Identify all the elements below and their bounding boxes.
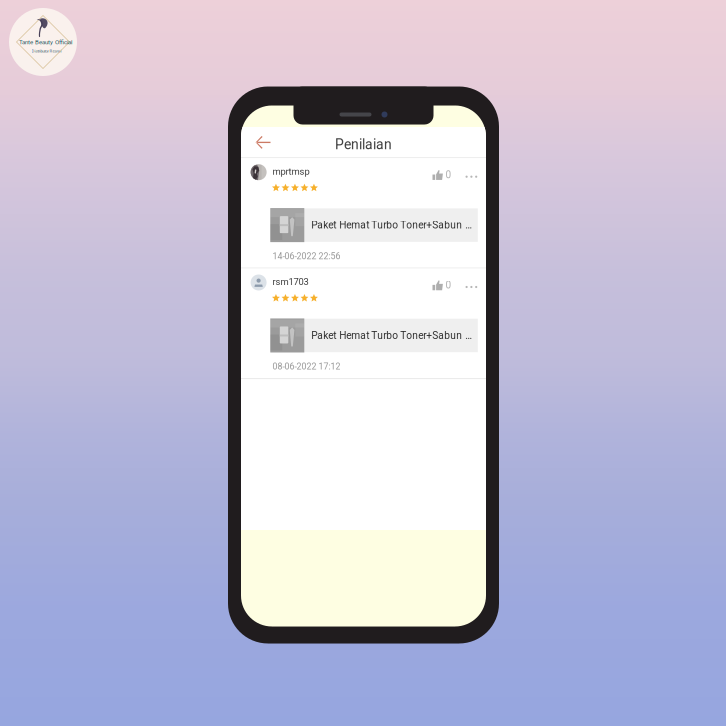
staticText: Distributor Resmi xyxy=(31,48,61,53)
button[interactable]: More options xyxy=(461,277,481,296)
button[interactable]: Paket Hemat Turbo Toner+Sabun … xyxy=(270,208,478,242)
staticText: Tante Beauty Official xyxy=(19,38,72,46)
staticText: 08-06-2022 17:12 xyxy=(272,361,340,372)
staticText: mprtmsp xyxy=(273,166,310,177)
staticText: 0 xyxy=(445,169,451,181)
button[interactable]: Back xyxy=(241,127,281,157)
button[interactable]: More options xyxy=(461,167,481,186)
button[interactable]: Paket Hemat Turbo Toner+Sabun … xyxy=(270,319,478,352)
staticText: rsm1703 xyxy=(273,276,309,287)
staticText: Penilaian xyxy=(335,136,392,153)
staticText: 0 xyxy=(445,279,451,291)
staticText: Paket Hemat Turbo Toner+Sabun … xyxy=(311,219,472,231)
staticText: Paket Hemat Turbo Toner+Sabun … xyxy=(311,329,472,341)
staticText: 14-06-2022 22:56 xyxy=(272,251,340,261)
